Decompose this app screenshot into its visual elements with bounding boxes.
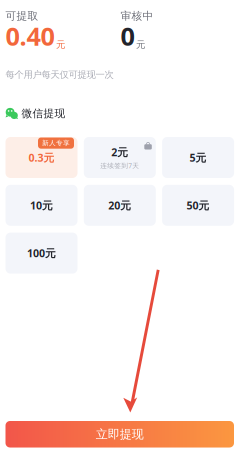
staticText: 50元 — [187, 198, 210, 212]
button[interactable]: 2元 — [84, 137, 156, 178]
staticText: 0.3元 — [28, 150, 54, 165]
staticText: 20元 — [108, 198, 131, 212]
staticText: 审核中 — [120, 9, 153, 22]
button[interactable]: 20元 — [84, 185, 156, 226]
staticText: 5元 — [190, 150, 207, 165]
staticText: 新人专享 — [42, 139, 70, 147]
staticText: 100元 — [27, 246, 56, 260]
staticText: 10元 — [30, 198, 53, 212]
button[interactable]: 5元 — [162, 137, 234, 178]
staticText: 元 — [136, 39, 145, 50]
button[interactable]: 0.3元 — [5, 137, 77, 178]
staticText: 微信提现 — [22, 107, 66, 120]
staticText: 2元 — [111, 145, 128, 159]
staticText: 可提取 — [5, 9, 38, 22]
staticText: 每个用户每天仅可提现一次 — [5, 69, 113, 80]
staticText: 连续签到7天 — [100, 161, 139, 170]
button[interactable]: 10元 — [5, 185, 77, 226]
button[interactable]: 100元 — [5, 233, 77, 274]
button[interactable]: 50元 — [162, 185, 234, 226]
staticText: 元 — [56, 39, 65, 50]
staticText: 0 — [120, 19, 134, 53]
staticText: 0.40 — [5, 19, 54, 53]
staticText: 立即提现 — [96, 427, 144, 442]
button[interactable]: 立即提现 — [5, 421, 234, 447]
